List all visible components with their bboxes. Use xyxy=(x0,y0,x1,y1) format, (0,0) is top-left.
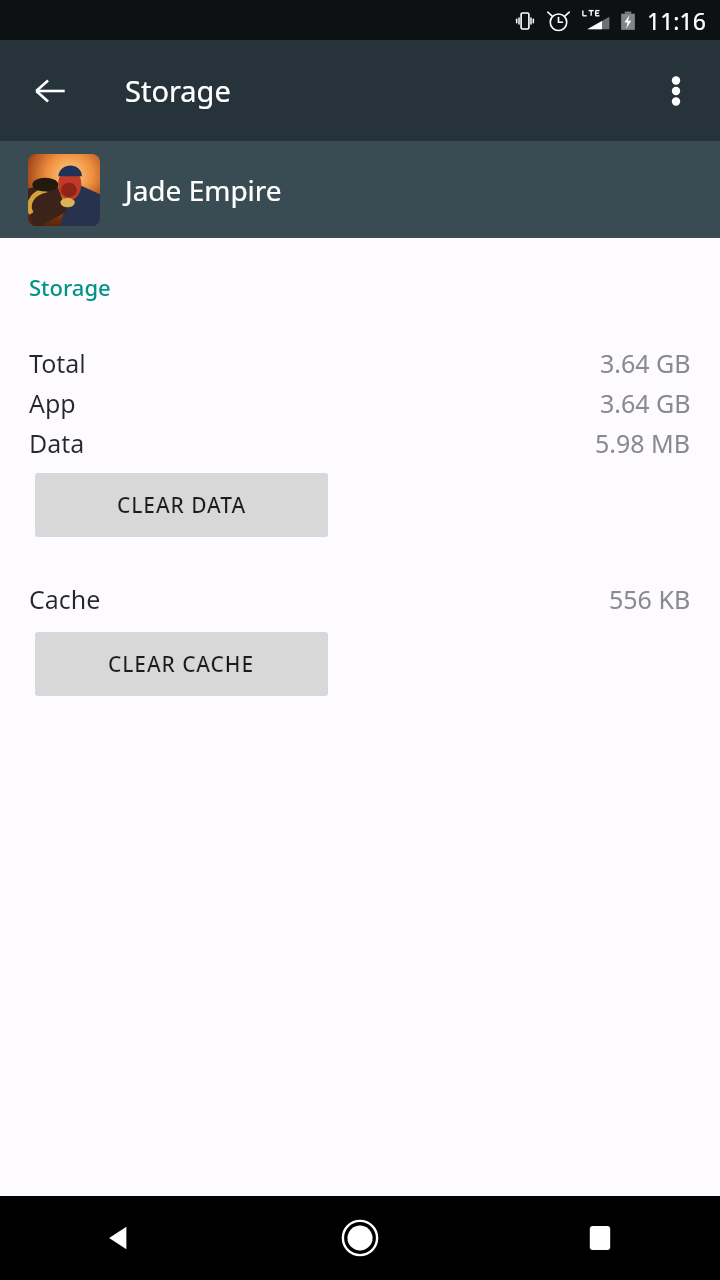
button[interactable]: Back xyxy=(18,59,82,123)
staticText: 3.64 GB xyxy=(600,386,691,420)
button[interactable]: Home xyxy=(240,1196,480,1280)
staticText: Cache xyxy=(29,582,101,616)
staticText: 556 KB xyxy=(609,582,691,616)
button[interactable]: More options xyxy=(644,59,708,123)
staticText: Jade Empire xyxy=(125,171,282,209)
staticText: Data xyxy=(29,426,85,460)
staticText: 5.98 MB xyxy=(595,426,691,460)
staticText: Storage xyxy=(29,272,111,302)
staticText: App xyxy=(29,386,76,420)
button[interactable]: CLEAR CACHE xyxy=(35,632,328,696)
staticText: Storage xyxy=(125,71,231,110)
staticText: 11:16 xyxy=(647,5,706,36)
staticText: CLEAR DATA xyxy=(117,491,247,520)
button[interactable]: Recent apps xyxy=(480,1196,720,1280)
staticText: 3.64 GB xyxy=(600,346,691,380)
staticText: CLEAR CACHE xyxy=(108,650,255,679)
button[interactable]: Back xyxy=(0,1196,240,1280)
button[interactable]: CLEAR DATA xyxy=(35,473,328,537)
staticText: Total xyxy=(29,346,86,380)
